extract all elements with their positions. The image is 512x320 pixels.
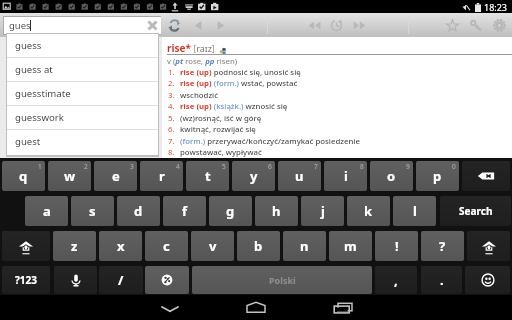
button[interactable]: h [255,196,298,226]
button[interactable]: ?123 [2,266,50,294]
button[interactable]: k [347,196,390,226]
button[interactable]: t [186,161,229,191]
button[interactable]: Shift [2,231,50,261]
button[interactable]: f [163,196,206,226]
button[interactable]: x [99,231,142,261]
staticText: j [321,202,325,220]
button[interactable]: p [416,161,459,191]
button[interactable]: guest [7,130,158,153]
staticText: l [413,202,417,220]
button[interactable]: Forward [209,13,231,37]
staticText: 2 [84,162,88,171]
button[interactable]: Change language [145,266,189,294]
staticText: u [295,167,304,185]
button[interactable]: e [94,161,137,191]
button[interactable]: q [2,161,45,191]
staticText: q [19,167,28,185]
button[interactable]: Home [232,295,280,320]
button[interactable]: guesswork [7,106,158,129]
staticText: guesswork [15,111,64,124]
button[interactable]: Refresh [163,13,185,37]
staticText: 1. [168,67,175,78]
button[interactable]: n [283,231,326,261]
staticText: r [159,167,165,185]
staticText: ! [395,237,399,255]
button[interactable]: a [25,196,68,226]
staticText: 5. [168,113,175,124]
staticText: 7 [314,162,318,171]
button[interactable]: guesstimate [7,82,158,105]
button[interactable]: Emoji [465,266,510,294]
staticText: guesstimate [15,87,71,100]
button[interactable]: Settings [488,13,510,37]
button[interactable]: Back [187,13,209,37]
staticText: guess at [15,63,53,76]
button[interactable]: Recent apps [319,295,367,320]
staticText: , [394,271,398,289]
staticText: 7. [168,136,175,147]
button[interactable]: u [278,161,321,191]
staticText: (form.) przerywać/kończyć/zamykać posied… [180,136,360,147]
staticText: i [344,167,348,185]
button[interactable]: Search [440,196,511,226]
button[interactable]: History [325,13,347,37]
button[interactable]: z [53,231,96,261]
staticText: t [205,167,211,185]
button[interactable]: Hide keyboard [146,295,194,320]
staticText: rise* [raɪz] [167,41,215,55]
staticText: n [300,237,309,255]
button[interactable]: o [370,161,413,191]
staticText: z [71,237,78,255]
button[interactable]: b [237,231,280,261]
button[interactable]: ? [421,231,464,261]
staticText: (wz)rosnąć, iść w górę [180,113,262,124]
staticText: . [440,271,444,289]
staticText: v [209,237,217,255]
button[interactable]: y [232,161,275,191]
button[interactable]: c [145,231,188,261]
staticText: v (pt rose, pp risen) [167,56,238,67]
staticText: x [117,237,125,255]
button[interactable]: Shift [467,231,510,261]
staticText: e [112,167,120,185]
button[interactable]: i [324,161,367,191]
button[interactable]: Next [348,13,370,37]
staticText: w [64,167,76,185]
staticText: guest [15,135,41,148]
button[interactable]: . [421,266,462,294]
staticText: 9 [406,162,410,171]
staticText: 1 [38,162,42,171]
button[interactable]: s [71,196,114,226]
button[interactable]: v [191,231,234,261]
button[interactable]: Polski [192,266,372,294]
button[interactable]: gues [3,16,161,35]
button[interactable]: r [140,161,183,191]
staticText: g [226,202,235,220]
staticText: kwitnąć, rozwijać się [180,124,256,135]
button[interactable]: Voice input [54,266,97,294]
button[interactable]: ! [375,231,418,261]
button[interactable]: , [375,266,417,294]
staticText: ?123 [15,273,37,287]
staticText: 8 [360,162,364,171]
button[interactable]: Search key [464,13,486,37]
button[interactable]: j [301,196,344,226]
button[interactable]: g [209,196,252,226]
button[interactable]: l [393,196,436,226]
button[interactable]: / [99,266,143,294]
staticText: m [344,237,357,255]
button[interactable]: w [48,161,91,191]
staticText: f [182,202,188,220]
staticText: s [89,202,96,220]
staticText: p [433,167,442,185]
button[interactable]: Bookmark [441,13,463,37]
staticText: rise (up) (form.) wstać, powstać [180,78,298,89]
button[interactable]: Previous [303,13,325,37]
staticText: 0 [452,162,456,171]
button[interactable]: Backspace [462,161,510,191]
button[interactable]: m [329,231,372,261]
button[interactable]: guess [7,34,158,57]
staticText: 6. [168,124,175,135]
button[interactable]: guess at [7,58,158,81]
button[interactable]: d [117,196,160,226]
